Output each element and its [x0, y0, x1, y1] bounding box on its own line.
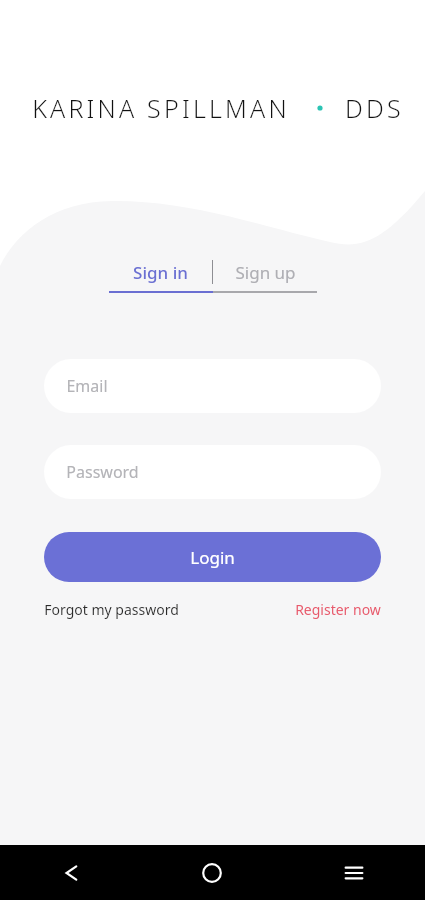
staticText: Register now: [295, 600, 381, 619]
staticText: Sign in: [133, 261, 188, 284]
button[interactable]: Login: [44, 532, 381, 582]
staticText: Sign up: [235, 261, 296, 284]
staticText: Email: [66, 375, 108, 397]
button[interactable]: Register now: [295, 594, 381, 625]
button[interactable]: Forgot my password: [44, 594, 179, 625]
staticText: DDS: [345, 91, 404, 125]
staticText: Password: [66, 461, 139, 483]
button[interactable]: Home: [141, 845, 283, 900]
button[interactable]: Back: [0, 845, 141, 900]
staticText: Forgot my password: [44, 600, 179, 619]
button[interactable]: Sign up: [213, 255, 317, 289]
button[interactable]: Email: [44, 359, 381, 413]
button[interactable]: Password: [44, 445, 381, 499]
staticText: KARINA SPILLMAN: [32, 91, 290, 125]
staticText: Login: [190, 546, 235, 569]
button[interactable]: Recent apps: [283, 845, 425, 900]
button[interactable]: Sign in: [109, 255, 212, 289]
